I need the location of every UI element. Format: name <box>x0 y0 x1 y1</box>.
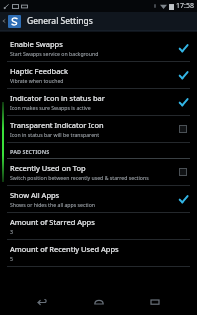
button[interactable]: Amount of Starred Apps <box>0 213 197 239</box>
button[interactable]: Recently Used on Top <box>0 159 197 185</box>
staticText: Start Swapps service on background <box>10 50 99 57</box>
staticText: General Settings <box>27 15 93 27</box>
staticText: Recently Used on Top <box>10 163 86 173</box>
button[interactable]: Checked <box>177 42 189 54</box>
staticText: Shows or hides the all apps section <box>10 201 95 208</box>
button[interactable]: Checked <box>177 69 189 81</box>
staticText: 17:58 <box>176 1 194 11</box>
button[interactable]: Recent apps <box>140 289 170 315</box>
button[interactable]: Back <box>27 289 57 315</box>
staticText: Amount of Starred Apps <box>10 217 95 227</box>
button[interactable]: Checked <box>177 96 189 108</box>
button[interactable]: Indicator Icon in status bar <box>0 89 197 115</box>
button[interactable]: Unchecked <box>177 166 189 178</box>
button[interactable]: Show All Apps <box>0 186 197 212</box>
staticText: Haptic Feedback <box>10 66 68 76</box>
staticText: Icon in status bar will be transparent <box>10 131 100 138</box>
staticText: Indicator Icon in status bar <box>10 93 105 103</box>
button[interactable]: Home <box>84 289 114 315</box>
staticText: Enable Swapps <box>10 39 63 49</box>
staticText: Amount of Recently Used Apps <box>10 244 119 254</box>
button[interactable]: Navigate up <box>0 12 8 30</box>
staticText: 5 <box>10 255 13 262</box>
button[interactable]: Transparent Indicator Icon <box>0 116 197 142</box>
staticText: Switch position between recently used & … <box>10 174 149 181</box>
staticText: Icon makes sure Swapps is active <box>10 104 91 111</box>
staticText: Vibrate when touched <box>10 77 64 84</box>
button[interactable]: Enable Swapps <box>0 35 197 61</box>
button[interactable]: Haptic Feedback <box>0 62 197 88</box>
button[interactable]: Amount of Recently Used Apps <box>0 240 197 266</box>
button[interactable]: Checked <box>177 193 189 205</box>
staticText: Show All Apps <box>10 190 60 200</box>
staticText: PAD SECTIONS <box>10 148 50 155</box>
button[interactable]: Unchecked <box>177 123 189 135</box>
staticText: 3 <box>10 228 13 235</box>
staticText: Transparent Indicator Icon <box>10 120 104 130</box>
